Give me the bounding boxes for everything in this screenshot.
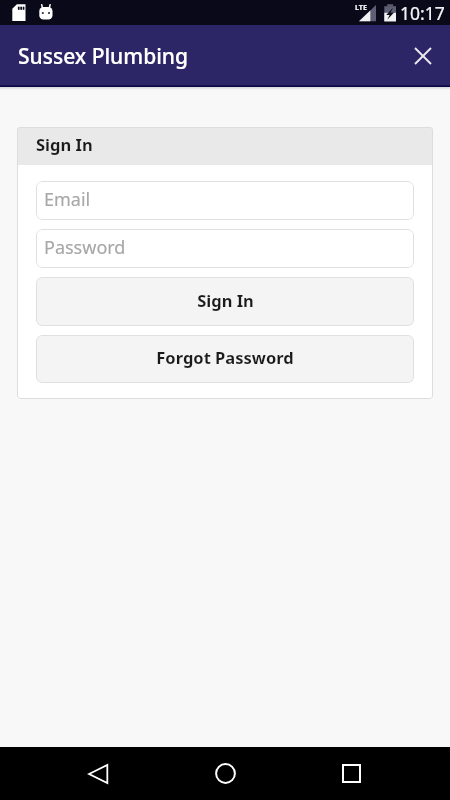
button[interactable]: Password (36, 229, 414, 268)
button[interactable]: Home (183, 747, 268, 800)
button[interactable]: Recents (309, 747, 394, 800)
staticText: Sussex Plumbing (18, 42, 189, 71)
button[interactable]: Email (36, 181, 414, 220)
staticText: Sign In (197, 289, 254, 311)
staticText: Sign In (36, 133, 93, 155)
button[interactable]: Close (401, 34, 445, 78)
button[interactable]: Sign In (36, 277, 414, 326)
button[interactable]: Forgot Password (36, 335, 414, 383)
staticText: Email (44, 187, 91, 212)
staticText: LTE (355, 2, 368, 12)
staticText: Password (44, 235, 126, 260)
staticText: Forgot Password (156, 346, 294, 368)
button[interactable]: Back (56, 747, 141, 800)
staticText: 10:17 (400, 1, 445, 25)
